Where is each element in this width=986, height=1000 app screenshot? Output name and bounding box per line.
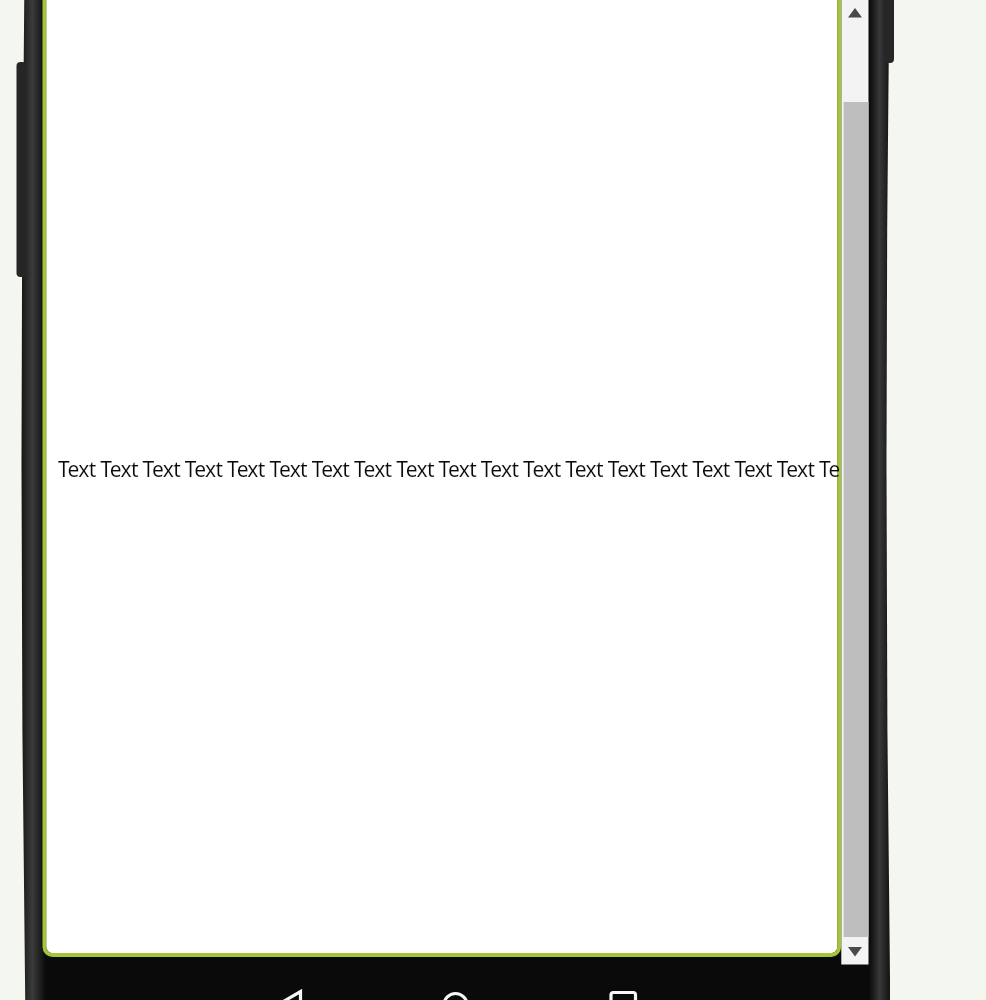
button[interactable] — [440, 984, 472, 1000]
button[interactable] — [270, 984, 304, 1000]
button[interactable] — [606, 984, 640, 1000]
staticText: Text Text Text Text Text Text Text Text … — [58, 455, 839, 484]
